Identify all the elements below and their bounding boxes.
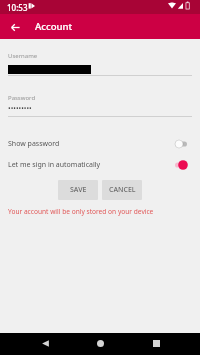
button[interactable]: Back [3, 15, 27, 39]
staticText: CANCEL [109, 185, 136, 195]
button[interactable]: Back [34, 335, 56, 352]
staticText: Let me sign in automatically [8, 160, 101, 170]
button[interactable]: Let me sign in automatically [8, 159, 192, 171]
staticText: SAVE [70, 185, 87, 195]
staticText: Your account will be only stored on your… [8, 207, 154, 216]
staticText: Password [8, 94, 36, 102]
staticText: ••••••••• [8, 104, 32, 114]
button[interactable]: Recent apps [145, 335, 167, 352]
staticText: Username [8, 52, 38, 60]
staticText: Account [35, 20, 73, 33]
staticText: Show password [8, 139, 60, 149]
button[interactable]: CANCEL [102, 180, 142, 200]
button[interactable]: Show password [8, 138, 192, 150]
button[interactable]: Home [89, 335, 111, 352]
staticText: 10:53 [7, 2, 28, 13]
button[interactable]: SAVE [58, 180, 98, 200]
